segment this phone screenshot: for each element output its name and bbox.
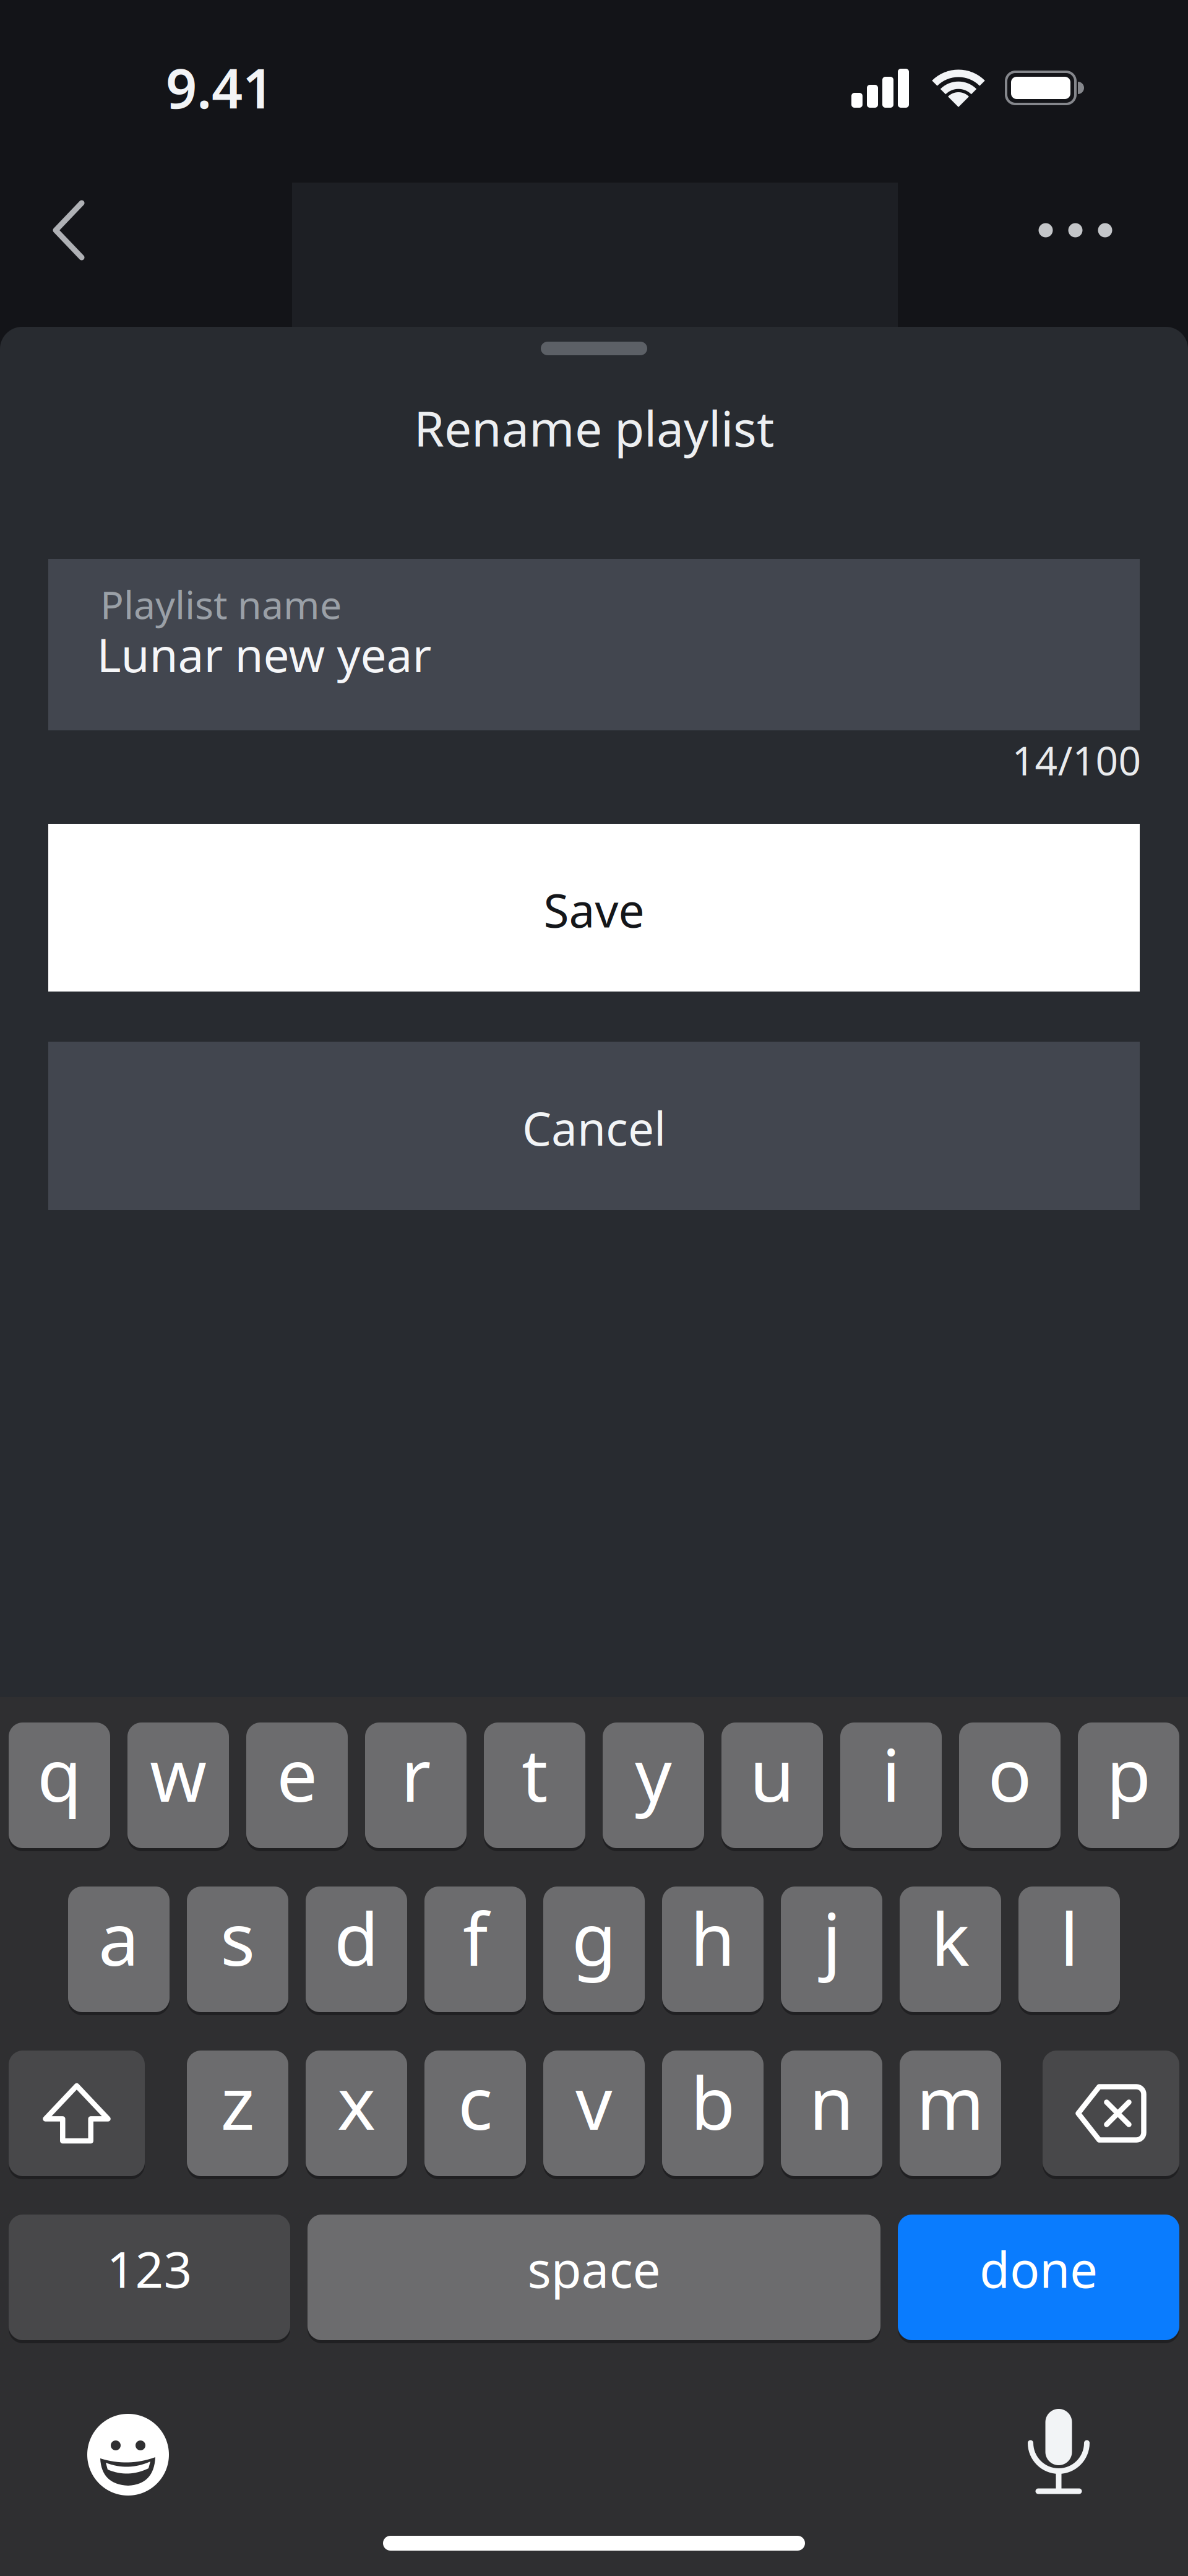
button[interactable]: q [9,1722,110,1848]
staticText: n [809,2053,854,2150]
button[interactable]: c [424,2051,526,2176]
button[interactable]: Delete [1043,2051,1179,2176]
staticText: o [988,1725,1032,1822]
button[interactable]: Emoji [87,2414,169,2496]
staticText: c [458,2053,493,2150]
staticText: e [277,1725,317,1822]
button[interactable]: h [662,1887,764,2012]
staticText: x [337,2053,376,2150]
button[interactable]: r [365,1722,467,1848]
button[interactable]: More options [1039,223,1112,237]
button[interactable]: d [306,1887,407,2012]
button[interactable]: Dictate [1025,2407,1093,2496]
staticText: y [635,1725,672,1822]
staticText: g [572,1889,616,1986]
button[interactable]: v [543,2051,645,2176]
staticText: Playlist name [100,578,342,630]
staticText: a [98,1889,139,1986]
button[interactable]: done [898,2215,1179,2340]
staticText: p [1106,1725,1151,1822]
button[interactable]: k [900,1887,1001,2012]
button[interactable]: x [306,2051,407,2176]
staticText: h [690,1889,735,1986]
button[interactable]: f [424,1887,526,2012]
staticText: done [979,2236,1098,2302]
staticText: space [527,2236,661,2302]
button[interactable]: m [900,2051,1001,2176]
button[interactable]: Shift [9,2051,145,2176]
button[interactable]: a [68,1887,170,2012]
button[interactable]: s [187,1887,288,2012]
button[interactable]: Save [48,824,1140,992]
staticText: Cancel [522,1097,666,1158]
button[interactable]: z [187,2051,288,2176]
button[interactable]: y [603,1722,704,1848]
staticText: t [522,1725,548,1822]
button[interactable]: o [959,1722,1061,1848]
button[interactable]: u [721,1722,823,1848]
staticText: v [575,2053,613,2150]
staticText: Lunar new year [97,624,432,685]
staticText: q [37,1725,82,1822]
staticText: j [822,1889,841,1986]
staticText: f [463,1889,488,1986]
staticText: u [750,1725,795,1822]
staticText: 14/100 [1012,734,1141,786]
button[interactable]: g [543,1887,645,2012]
button[interactable]: n [781,2051,882,2176]
button[interactable]: b [662,2051,764,2176]
button[interactable]: e [246,1722,348,1848]
staticText: m [916,2053,984,2150]
staticText: s [220,1889,255,1986]
button[interactable]: Back [49,201,87,260]
staticText: r [401,1725,431,1822]
button[interactable]: l [1018,1887,1120,2012]
button[interactable]: space [308,2215,880,2340]
button[interactable]: w [127,1722,229,1848]
staticText: z [221,2053,255,2150]
staticText: d [334,1889,379,1986]
staticText: 123 [107,2236,192,2302]
staticText: l [1060,1889,1078,1986]
button[interactable]: t [484,1722,585,1848]
button[interactable]: Playlist name [48,559,1140,730]
staticText: 9.41 [166,51,273,123]
button[interactable]: p [1078,1722,1179,1848]
staticText: b [691,2053,735,2150]
staticText: Save [544,879,644,940]
button[interactable]: i [840,1722,942,1848]
button[interactable]: Cancel [48,1042,1140,1210]
button[interactable]: 123 [9,2215,290,2340]
staticText: w [150,1725,207,1822]
staticText: k [931,1889,970,1986]
button[interactable]: j [781,1887,882,2012]
staticText: i [882,1725,900,1822]
staticText: Rename playlist [414,395,774,460]
